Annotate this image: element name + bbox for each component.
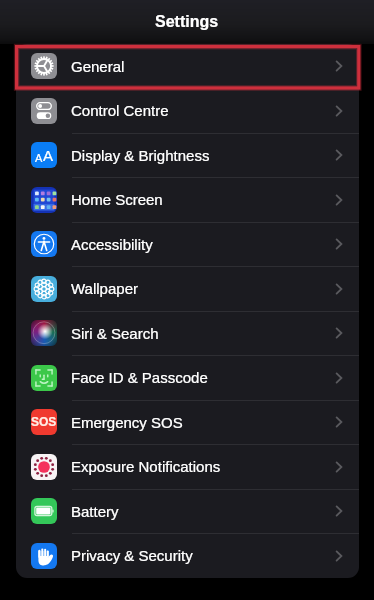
button[interactable]: Siri & Search	[16, 311, 359, 355]
staticText: General	[71, 58, 125, 75]
button[interactable]: Face ID & Passcode	[16, 355, 359, 400]
staticText: Battery	[71, 503, 119, 520]
staticText: A	[43, 147, 54, 164]
staticText: Emergency SOS	[71, 414, 183, 431]
staticText: Accessibility	[71, 236, 153, 253]
staticText: A	[35, 152, 43, 164]
button[interactable]: Control Centre	[16, 88, 359, 133]
button[interactable]: A	[16, 133, 359, 177]
button[interactable]: Battery	[16, 489, 359, 533]
staticText: Wallpaper	[71, 280, 138, 297]
staticText: Siri & Search	[71, 325, 159, 342]
button[interactable]: SOS	[16, 400, 359, 444]
staticText: Settings	[155, 13, 219, 31]
button[interactable]: Home Screen	[16, 177, 359, 222]
staticText: Home Screen	[71, 191, 163, 208]
staticText: SOS	[31, 415, 57, 428]
staticText: Privacy & Security	[71, 547, 193, 564]
staticText: Control Centre	[71, 102, 169, 119]
button[interactable]: General	[16, 44, 359, 88]
button[interactable]: Wallpaper	[16, 266, 359, 311]
other: Settings	[0, 0, 374, 44]
staticText: Exposure Notifications	[71, 458, 221, 475]
button[interactable]: Accessibility	[16, 222, 359, 266]
button[interactable]: Privacy & Security	[16, 533, 359, 578]
staticText: Face ID & Passcode	[71, 369, 208, 386]
button[interactable]: Exposure Notifications	[16, 444, 359, 489]
staticText: Display & Brightness	[71, 147, 210, 164]
